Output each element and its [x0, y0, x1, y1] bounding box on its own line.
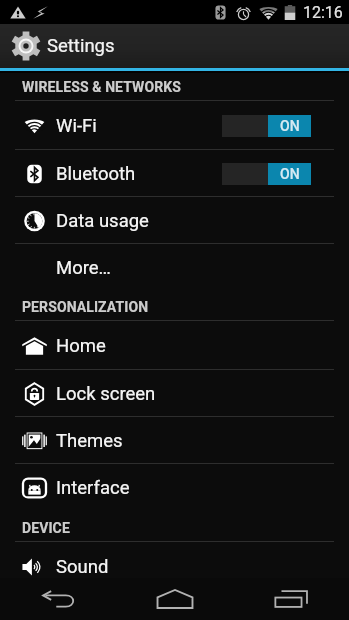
staticText: WIRELESS & NETWORKS: [22, 79, 182, 95]
staticText: Bluetooth: [56, 163, 136, 185]
button[interactable]: Lock screen: [0, 370, 349, 417]
button[interactable]: Settings: [11, 31, 115, 61]
button[interactable]: Wi-Fi: [0, 101, 349, 150]
staticText: PERSONALIZATION: [22, 299, 149, 315]
staticText: Themes: [56, 430, 123, 452]
button[interactable]: More…: [0, 244, 349, 291]
staticText: Sound: [56, 556, 109, 578]
staticText: Data usage: [56, 210, 149, 232]
staticText: Interface: [56, 477, 130, 499]
button[interactable]: ON: [222, 163, 311, 185]
button[interactable]: ON: [222, 115, 311, 137]
staticText: 12:16: [303, 3, 343, 22]
staticText: More…: [56, 257, 111, 279]
staticText: Lock screen: [56, 383, 156, 405]
button[interactable]: Themes: [0, 417, 349, 464]
button[interactable]: Back: [0, 578, 117, 620]
staticText: ON: [280, 166, 300, 182]
staticText: DEVICE: [22, 520, 70, 536]
button[interactable]: Recent apps: [233, 578, 349, 620]
button[interactable]: Sound: [0, 542, 349, 591]
staticText: Home: [56, 335, 106, 357]
button[interactable]: Bluetooth: [0, 150, 349, 197]
button[interactable]: Data usage: [0, 197, 349, 244]
button[interactable]: Home: [0, 321, 349, 370]
staticText: Settings: [47, 35, 115, 57]
button[interactable]: Interface: [0, 464, 349, 511]
staticText: Wi-Fi: [56, 115, 97, 137]
staticText: ON: [280, 118, 300, 134]
button[interactable]: Home: [117, 578, 233, 620]
